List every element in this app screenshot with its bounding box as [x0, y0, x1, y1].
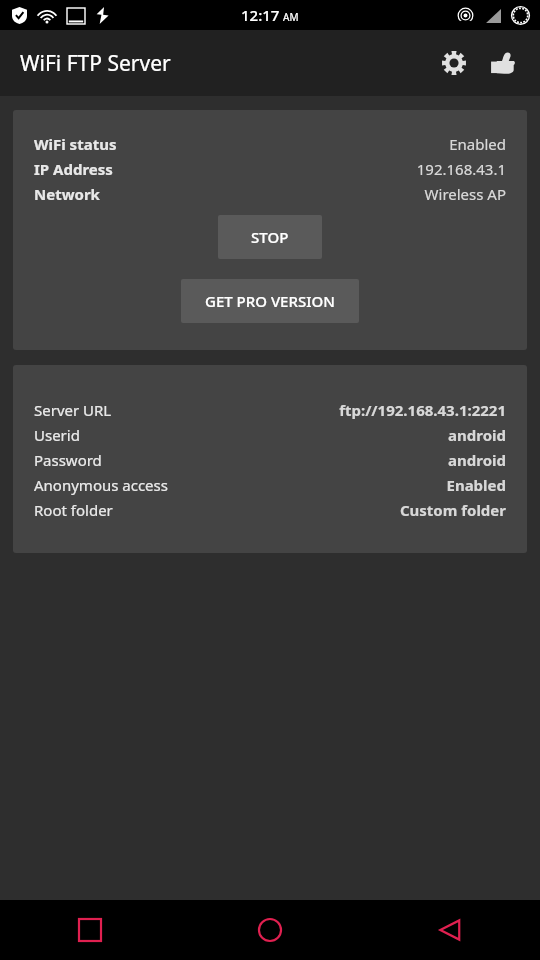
staticText: ftp://192.168.43.1:2221 — [339, 400, 506, 420]
button[interactable]: Recent apps — [0, 900, 180, 960]
staticText: Anonymous access — [34, 475, 168, 495]
staticText: Enabled — [449, 134, 506, 154]
staticText: Password — [34, 450, 102, 470]
button[interactable]: Back — [360, 900, 540, 960]
staticText: STOP — [251, 227, 289, 247]
staticText: android — [448, 425, 506, 445]
staticText: WiFi FTP Server — [20, 49, 171, 78]
staticText: 12:17 — [241, 5, 280, 25]
staticText: Network — [34, 184, 100, 204]
button[interactable]: Home — [180, 900, 360, 960]
staticText: Enabled — [446, 475, 506, 495]
staticText: 192.168.43.1 — [416, 159, 506, 179]
button[interactable]: Rate app — [478, 39, 526, 87]
staticText: Custom folder — [399, 500, 506, 520]
staticText: WiFi status — [34, 134, 117, 154]
staticText: Userid — [34, 425, 80, 445]
staticText: IP Address — [34, 159, 113, 179]
staticText: Server URL — [34, 400, 112, 420]
staticText: Root folder — [34, 500, 113, 520]
staticText: AM — [283, 10, 299, 24]
button[interactable]: Settings — [430, 39, 478, 87]
button[interactable]: GET PRO VERSION — [181, 279, 359, 323]
button[interactable]: STOP — [218, 215, 322, 259]
staticText: Wireless AP — [424, 184, 506, 204]
staticText: GET PRO VERSION — [205, 291, 335, 311]
staticText: android — [448, 450, 506, 470]
